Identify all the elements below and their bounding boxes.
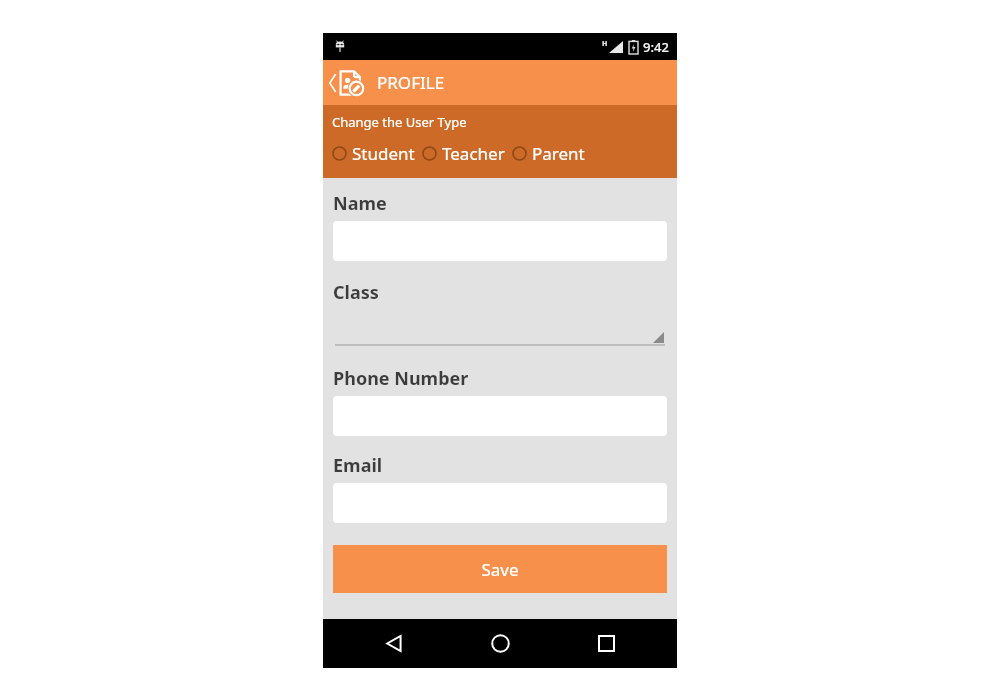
staticText: Teacher	[442, 142, 505, 165]
button[interactable]: Parent	[512, 140, 585, 167]
button[interactable]: Select class	[333, 310, 667, 350]
staticText: Phone Number	[333, 366, 469, 391]
staticText: Email	[333, 453, 383, 478]
staticText: Parent	[532, 142, 585, 165]
staticText: 9:42	[643, 38, 669, 56]
staticText: H	[602, 39, 608, 49]
button[interactable]: Student	[332, 140, 415, 167]
button[interactable]: Home	[465, 619, 535, 668]
button[interactable]: Teacher	[422, 140, 505, 167]
button[interactable]: Back	[323, 60, 371, 105]
staticText: Student	[352, 142, 415, 165]
staticText: Save	[481, 558, 519, 581]
button[interactable]: Save	[333, 545, 667, 593]
staticText: PROFILE	[377, 71, 445, 94]
button[interactable]: Back	[359, 619, 429, 668]
staticText: Change the User Type	[332, 113, 467, 131]
staticText: Name	[333, 191, 387, 216]
staticText: Class	[333, 280, 379, 305]
button[interactable]: Recent apps	[571, 619, 641, 668]
